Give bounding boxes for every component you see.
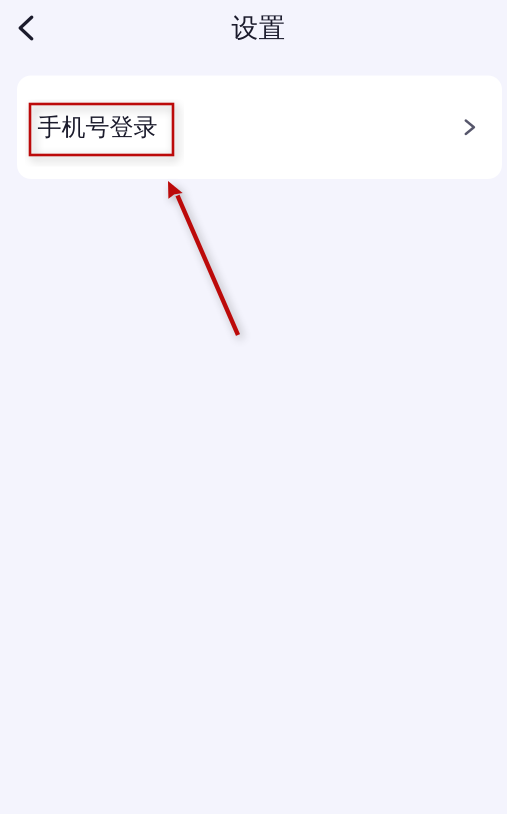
staticText: 设置: [231, 12, 285, 44]
button[interactable]: Back: [3, 5, 49, 51]
button[interactable]: 手机号登录: [17, 75, 502, 179]
staticText: 手机号登录: [38, 112, 158, 142]
